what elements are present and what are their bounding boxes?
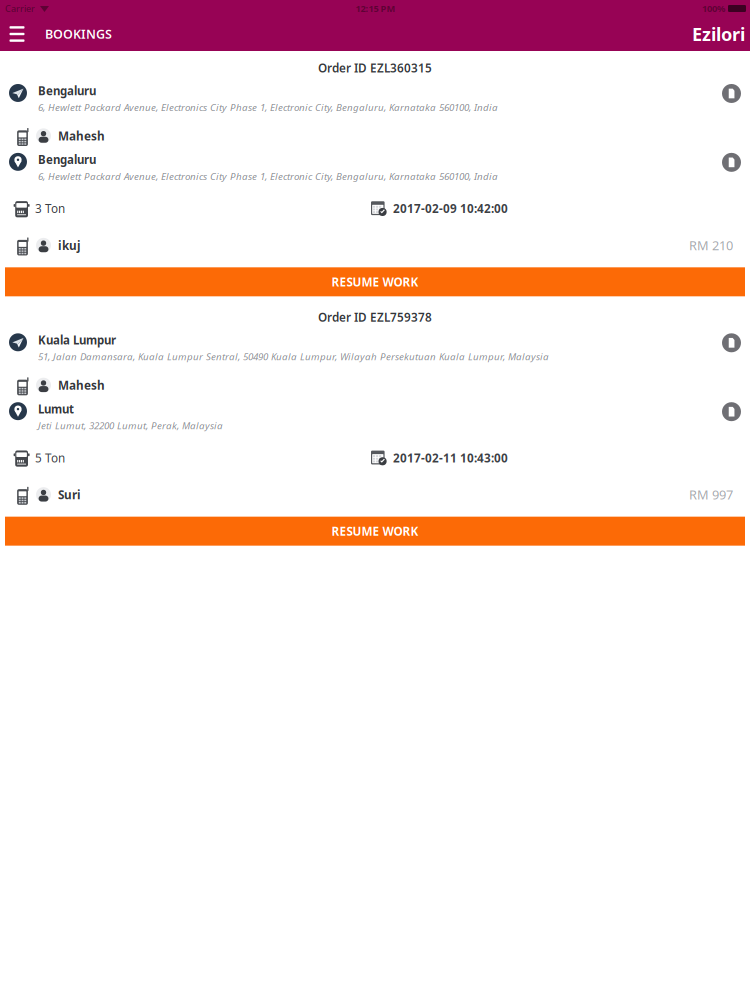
staticText: Order ID EZL360315 (318, 60, 432, 76)
staticText: 51, Jalan Damansara, Kuala Lumpur Sentra… (38, 350, 549, 363)
button[interactable]: Notes (722, 83, 750, 103)
staticText: RM 210 (689, 237, 733, 254)
staticText: Order ID EZL759378 (318, 309, 432, 325)
button[interactable]: RESUME WORK (5, 267, 745, 296)
staticText: 100% (702, 2, 725, 15)
staticText: Lumut (38, 401, 74, 417)
button[interactable]: Notes (722, 332, 750, 352)
staticText: 5 Ton (35, 450, 65, 466)
staticText: 6, Hewlett Packard Avenue, Electronics C… (38, 101, 498, 114)
staticText: BOOKINGS (45, 25, 112, 43)
staticText: Carrier (5, 2, 35, 15)
staticText: 2017-02-11 10:43:00 (393, 450, 508, 466)
button[interactable]: Menu (2, 17, 32, 51)
staticText: 12:15 PM (355, 2, 395, 15)
button[interactable]: RESUME WORK (5, 517, 745, 546)
staticText: Suri (58, 487, 81, 503)
button[interactable]: Notes (722, 401, 750, 421)
button[interactable]: Notes (722, 152, 750, 172)
staticText: RESUME WORK (331, 274, 418, 290)
staticText: 6, Hewlett Packard Avenue, Electronics C… (38, 169, 498, 183)
staticText: RM 997 (689, 486, 733, 503)
staticText: RESUME WORK (331, 523, 418, 539)
staticText: Ezilori (692, 22, 745, 46)
staticText: ikuj (58, 237, 80, 253)
staticText: Bengaluru (38, 152, 96, 167)
staticText: Mahesh (58, 128, 105, 144)
staticText: Kuala Lumpur (38, 332, 116, 348)
staticText: Mahesh (58, 377, 105, 393)
staticText: 2017-02-09 10:42:00 (393, 200, 508, 216)
staticText: 3 Ton (35, 200, 65, 216)
staticText: Jeti Lumut, 32200 Lumut, Perak, Malaysia (38, 419, 223, 432)
staticText: Bengaluru (38, 83, 96, 99)
